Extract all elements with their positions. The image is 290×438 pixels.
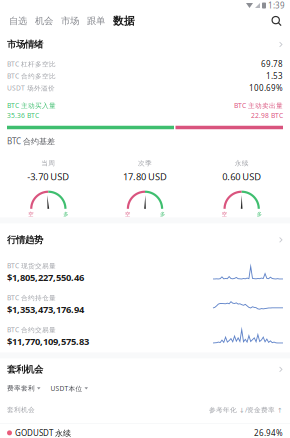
staticText: 费率套利 — [7, 384, 35, 392]
button[interactable]: 行情趋势 — [0, 223, 290, 256]
button[interactable]: BTC 现货交易量 — [0, 256, 290, 288]
staticText: 1:39 — [268, 0, 285, 11]
staticText: $1,353,473,176.94 — [7, 303, 84, 315]
staticText: 多 — [257, 211, 262, 217]
staticText: 空 — [222, 211, 227, 217]
staticText: 22.98 BTC — [251, 111, 283, 120]
button[interactable]: 费率套利 — [7, 380, 40, 396]
staticText: USDT 场外溢价 — [7, 84, 55, 92]
staticText: 17.80 USD — [123, 170, 167, 183]
staticText: BTC 现货交易量 — [7, 261, 56, 270]
staticText: $1,805,227,550.46 — [7, 271, 84, 283]
staticText: 空 — [28, 211, 33, 217]
staticText: 套利机会 — [7, 364, 43, 375]
button[interactable]: 市场 — [57, 11, 83, 31]
staticText: 35.36 BTC — [7, 111, 39, 120]
staticText: GODUSDT 永续 — [15, 427, 71, 438]
staticText: 多 — [160, 211, 165, 217]
staticText: 行情趋势 — [7, 234, 43, 246]
button[interactable]: 跟单 — [83, 11, 109, 31]
staticText: -3.70 USD — [27, 170, 69, 183]
staticText: 套利机会 — [7, 406, 35, 414]
button[interactable]: 套利机会 — [0, 358, 290, 380]
button[interactable]: 市场情绪 — [0, 31, 290, 58]
staticText: 空 — [125, 211, 130, 217]
button[interactable]: USDT本位 — [50, 380, 88, 396]
staticText: BTC 主动买入量 — [7, 101, 56, 110]
button[interactable]: 自选 — [5, 11, 31, 31]
staticText: 参考年化 ↓/资金费率 ↑ — [209, 405, 283, 414]
staticText: 100.69% — [249, 83, 283, 93]
staticText: 26.94% — [254, 428, 283, 438]
staticText: 1.53 — [266, 71, 283, 81]
button[interactable]: 搜索 — [270, 15, 283, 26]
staticText: USDT本位 — [50, 384, 82, 393]
staticText: BTC 合约基差 — [7, 136, 55, 147]
staticText: BTC 主动卖出量 — [234, 101, 283, 110]
staticText: 市场情绪 — [7, 39, 43, 50]
staticText: BTC 合约交易量 — [7, 325, 56, 334]
staticText: 69.78 — [261, 59, 283, 69]
staticText: 机会 — [35, 15, 53, 27]
staticText: 自选 — [9, 15, 27, 27]
staticText: 永续 — [235, 159, 249, 167]
staticText: 多 — [63, 211, 68, 217]
staticText: 0.60 USD — [222, 170, 261, 183]
staticText: BTC 杠杆多空比 — [7, 60, 56, 68]
staticText: 当周 — [41, 159, 55, 167]
button[interactable]: BTC 合约持仓量 — [0, 288, 290, 320]
staticText: 次季 — [138, 159, 152, 167]
staticText: 跟单 — [87, 15, 105, 27]
button[interactable]: 数据 — [109, 11, 139, 31]
staticText: BTC 合约多空比 — [7, 72, 56, 80]
staticText: $11,770,109,575.83 — [7, 335, 89, 347]
staticText: 数据 — [113, 14, 135, 27]
staticText: BTC 合约持仓量 — [7, 293, 56, 302]
button[interactable]: 机会 — [31, 11, 57, 31]
staticText: 市场 — [61, 15, 79, 27]
button[interactable]: BTC 合约交易量 — [0, 320, 290, 352]
